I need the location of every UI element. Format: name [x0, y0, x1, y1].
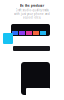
staticText: a good idea.: [23, 16, 41, 19]
staticText: Be the producer: [20, 4, 44, 7]
staticText: Craft studio-quality tracks: [15, 8, 48, 12]
staticText: with just your phone and: [14, 12, 50, 16]
